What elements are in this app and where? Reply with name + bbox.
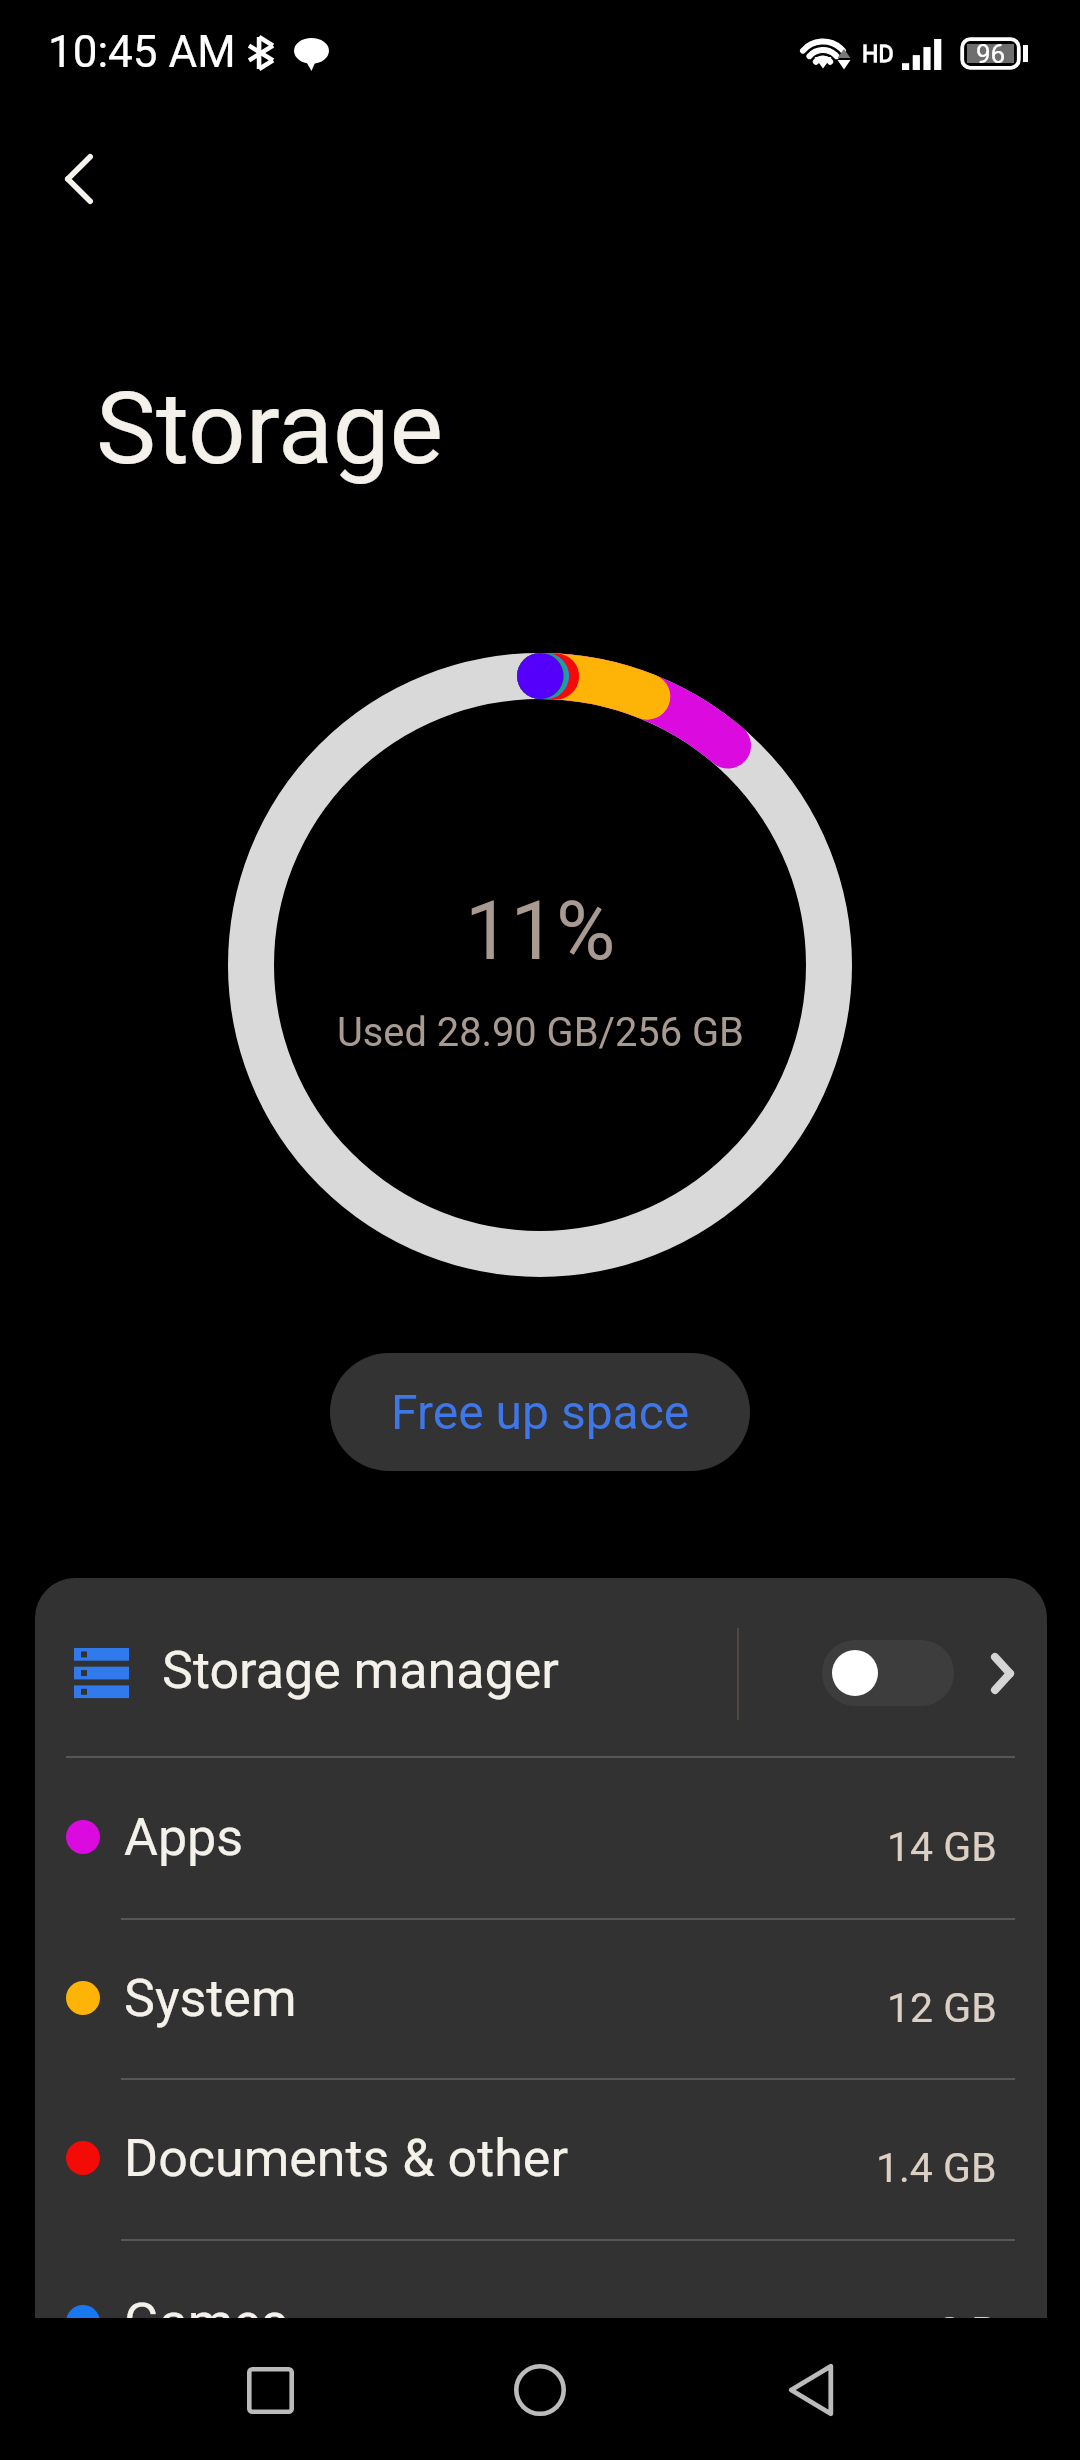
staticText: 0 B <box>938 2308 997 2318</box>
staticText: 1.4 GB <box>876 2144 997 2192</box>
staticText: Free up space <box>391 1384 690 1440</box>
staticText: System <box>124 1968 297 2029</box>
staticText: 96 <box>976 39 1006 69</box>
button[interactable]: Documents & other <box>35 2078 1047 2238</box>
staticText: Storage <box>96 369 444 487</box>
button[interactable]: Back <box>13 126 119 232</box>
button[interactable]: Recent apps <box>225 2345 315 2435</box>
button[interactable]: Free up space <box>330 1353 750 1471</box>
staticText: 10:45 AM <box>48 26 236 78</box>
button[interactable]: Apps <box>35 1757 1047 1917</box>
staticText: 11% <box>465 884 616 979</box>
staticText: Used 28.90 GB/256 GB <box>337 1009 744 1056</box>
staticText: HD <box>862 41 894 68</box>
staticText: Apps <box>124 1807 244 1868</box>
staticText: 14 GB <box>887 1823 997 1871</box>
button[interactable]: Back <box>766 2345 856 2435</box>
button[interactable]: Storage manager toggle <box>822 1640 954 1706</box>
staticText: 12 GB <box>887 1984 997 2032</box>
button[interactable]: System <box>35 1918 1047 2078</box>
button[interactable]: Games <box>35 2242 1047 2318</box>
staticText: Storage manager <box>162 1640 559 1701</box>
button[interactable]: Home <box>495 2345 585 2435</box>
staticText: Documents & other <box>124 2128 569 2189</box>
staticText: Games <box>124 2292 288 2318</box>
button[interactable]: Storage manager <box>35 1578 1047 1756</box>
